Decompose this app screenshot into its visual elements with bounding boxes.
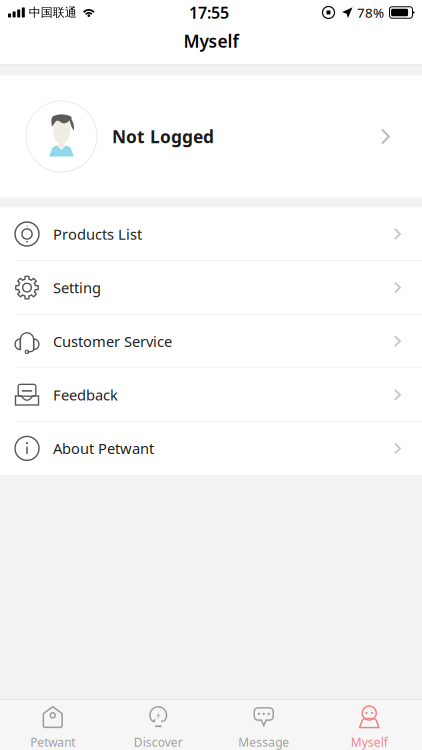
staticText: Message bbox=[238, 734, 289, 750]
button[interactable]: Customer Service bbox=[0, 315, 422, 368]
staticText: Discover bbox=[134, 734, 183, 750]
staticText: Setting bbox=[53, 278, 101, 297]
staticText: Myself bbox=[183, 29, 238, 52]
staticText: 中国联通 bbox=[29, 5, 77, 20]
button[interactable]: Discover bbox=[105, 700, 211, 750]
button[interactable]: Products List bbox=[0, 207, 422, 261]
staticText: Not Logged bbox=[112, 125, 214, 148]
staticText: Myself bbox=[351, 734, 388, 750]
staticText: Petwant bbox=[30, 734, 75, 750]
button[interactable]: About Petwant bbox=[0, 422, 422, 475]
staticText: Customer Service bbox=[53, 331, 172, 351]
button[interactable]: Message bbox=[211, 700, 316, 750]
button[interactable]: Petwant bbox=[0, 700, 105, 750]
button[interactable]: Myself bbox=[316, 700, 422, 750]
staticText: Feedback bbox=[53, 385, 118, 405]
button[interactable]: Feedback bbox=[0, 368, 422, 422]
staticText: About Petwant bbox=[53, 439, 154, 458]
button[interactable]: Not Logged bbox=[0, 75, 422, 197]
staticText: 78% bbox=[357, 4, 384, 21]
staticText: 17:55 bbox=[189, 2, 229, 23]
button[interactable]: Setting bbox=[0, 261, 422, 315]
staticText: Products List bbox=[53, 224, 142, 244]
